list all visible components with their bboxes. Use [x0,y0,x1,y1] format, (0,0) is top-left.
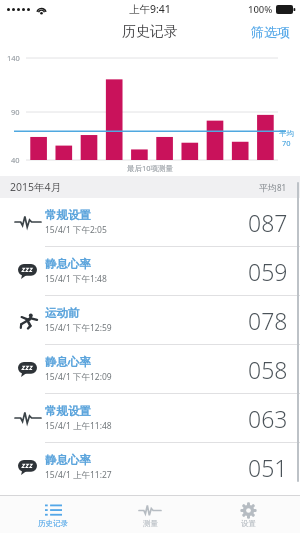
staticText: 100% [248,3,273,16]
staticText: 上午9:41 [129,2,171,16]
staticText: 058 [248,354,288,385]
staticText: 静息心率 [45,257,91,271]
button[interactable]: 静息心率 [0,344,300,393]
staticText: 常规设置 [45,404,91,418]
button[interactable]: 运动前 [0,295,300,344]
staticText: 90 [11,107,20,117]
staticText: 常规设置 [45,208,91,222]
staticText: 15/4/1 上午11:48 [45,420,112,432]
staticText: 历史记录 [38,519,68,528]
staticText: 059 [248,256,288,287]
staticText: 平均 [259,182,277,193]
staticText: 测量 [143,519,158,528]
button[interactable]: 静息心率 [0,246,300,295]
staticText: 15/4/1 上午11:27 [45,469,112,481]
staticText: 15/4/1 下午12:59 [45,322,112,334]
button[interactable]: 常规设置 [0,198,300,246]
button[interactable]: 静息心率 [0,442,300,491]
staticText: 078 [248,305,288,336]
button[interactable]: 设置 [203,499,293,531]
staticText: 70 [282,138,291,148]
staticText: 140 [7,53,20,63]
button[interactable]: 常规设置 [0,393,300,442]
staticText: 运动前 [45,306,80,320]
button[interactable]: 测量 [105,499,195,531]
staticText: 81 [277,182,287,193]
staticText: 15/4/1 下午12:09 [45,371,112,383]
staticText: 40 [11,155,20,165]
staticText: 平均 [279,129,294,138]
staticText: 最后10项测量 [127,163,174,173]
staticText: 静息心率 [45,453,91,467]
staticText: 087 [248,207,288,238]
button[interactable]: 筛选项 [241,20,300,44]
staticText: 设置 [241,519,256,528]
staticText: 2015年4月 [10,180,62,194]
staticText: 15/4/1 下午1:48 [45,273,107,285]
button[interactable]: 历史记录 [8,499,98,531]
staticText: 历史记录 [122,23,178,41]
staticText: 15/4/1 下午2:05 [45,224,107,236]
staticText: 051 [248,452,288,483]
staticText: 静息心率 [45,355,91,369]
staticText: 063 [248,403,288,434]
staticText: 筛选项 [251,24,290,40]
